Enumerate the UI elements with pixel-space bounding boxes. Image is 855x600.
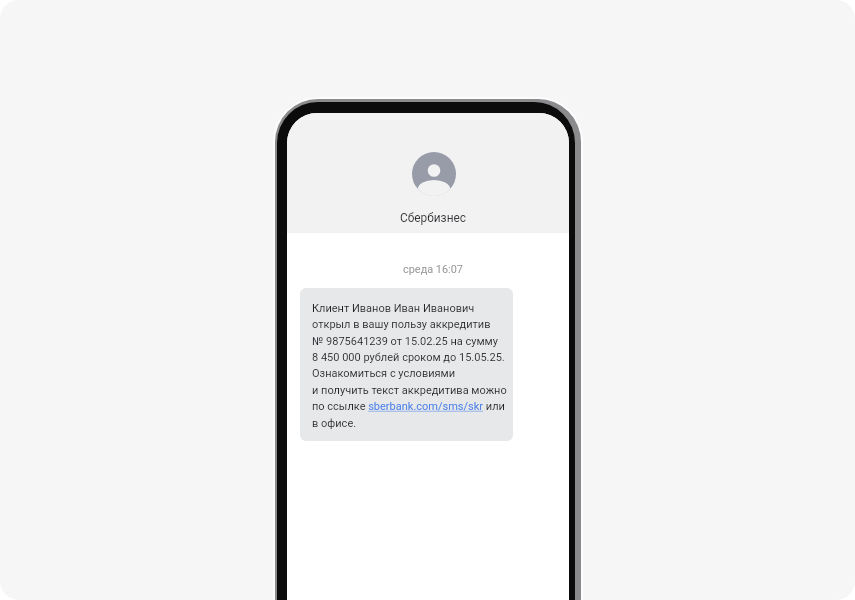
button[interactable]: Contact avatar: [412, 152, 456, 196]
staticText: и получить текст аккредитива можно: [312, 384, 507, 397]
staticText: Клиент Иванов Иван Иванович: [312, 302, 475, 315]
button[interactable]: Сбербизнес conversation header: [287, 113, 569, 233]
button[interactable]: Клиент Иванов Иван Иванович: [300, 288, 513, 441]
staticText: по ссылке sberbank.com/sms/skr или: [312, 400, 505, 413]
staticText: открыл в вашу пользу аккредитив: [312, 318, 491, 331]
staticText: Ознакомиться с условиями: [312, 367, 456, 380]
staticText: среда 16:07: [353, 263, 513, 276]
staticText: в офисе.: [312, 417, 357, 430]
staticText: 8 450 000 рублей сроком до 15.05.25.: [312, 351, 505, 364]
staticText: № 9875641239 от 15.02.25 на сумму: [312, 335, 498, 348]
staticText: Сбербизнес: [353, 211, 513, 225]
